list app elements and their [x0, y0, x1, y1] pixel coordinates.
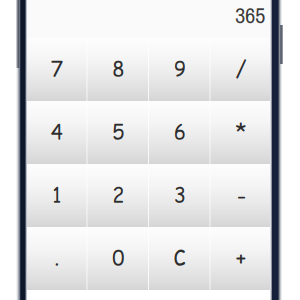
button[interactable]: C — [149, 227, 210, 290]
button[interactable]: Volume — [16, 0, 20, 68]
button[interactable]: 2 — [87, 164, 149, 227]
button[interactable]: 4 — [26, 101, 87, 164]
staticText: * — [235, 117, 247, 148]
button[interactable]: * — [210, 101, 272, 164]
staticText: C — [174, 244, 186, 272]
button[interactable]: 0 — [87, 227, 149, 290]
staticText: 365 — [235, 0, 265, 30]
button[interactable]: . — [26, 227, 87, 290]
staticText: 4 — [51, 118, 63, 146]
staticText: 8 — [112, 55, 124, 83]
button[interactable]: 5 — [87, 101, 149, 164]
button[interactable]: 1 — [26, 164, 87, 227]
button[interactable]: 9 — [149, 38, 210, 101]
staticText: 6 — [174, 118, 186, 146]
button[interactable]: - — [210, 164, 272, 227]
button[interactable]: / — [210, 38, 272, 101]
staticText: 5 — [112, 118, 124, 146]
staticText: - — [237, 180, 246, 211]
button[interactable]: 7 — [26, 38, 87, 101]
staticText: 3 — [174, 181, 186, 209]
staticText: 0 — [112, 244, 124, 272]
button[interactable]: 8 — [87, 38, 149, 101]
staticText: 1 — [52, 181, 61, 209]
staticText: 7 — [51, 55, 63, 83]
staticText: . — [54, 244, 59, 272]
staticText: + — [236, 243, 247, 274]
button[interactable]: Power — [280, 25, 283, 64]
staticText: 9 — [174, 55, 186, 83]
button[interactable]: 6 — [149, 101, 210, 164]
staticText: / — [235, 54, 247, 85]
staticText: 2 — [112, 181, 124, 209]
button[interactable]: + — [210, 227, 272, 290]
button[interactable]: 3 — [149, 164, 210, 227]
